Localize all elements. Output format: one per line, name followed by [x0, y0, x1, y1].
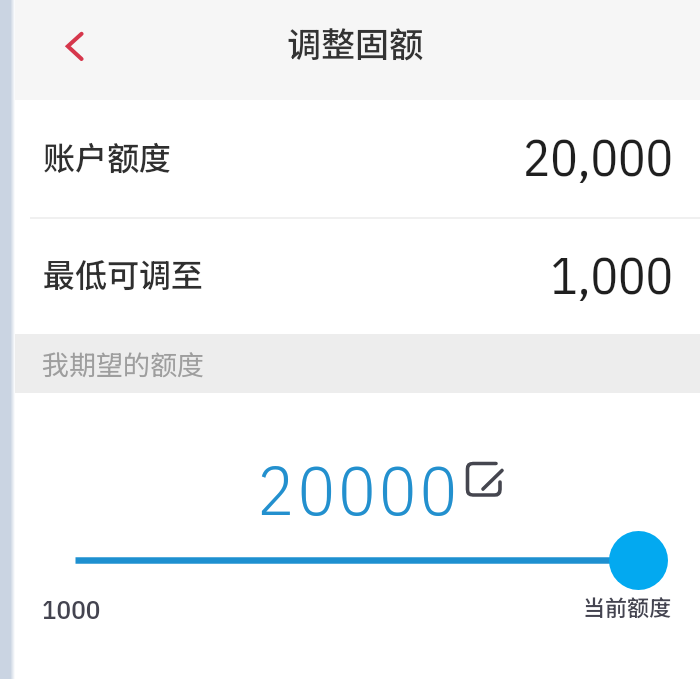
staticText: 调整固额	[5, 18, 700, 67]
button[interactable]: Edit amount	[462, 458, 508, 504]
button[interactable]: Back	[48, 22, 100, 74]
button[interactable]: 账户额度	[0, 100, 700, 218]
staticText: 当前额度	[583, 590, 672, 622]
button[interactable]: Credit limit slider	[0, 525, 700, 595]
staticText: 20,000	[0, 124, 673, 190]
staticText: 1,000	[0, 242, 673, 308]
staticText: 20000	[257, 444, 461, 534]
button[interactable]: Slider thumb	[609, 531, 668, 590]
staticText: 账户额度	[43, 133, 172, 179]
staticText: 最低可调至	[43, 250, 204, 296]
staticText: 1000	[42, 591, 101, 626]
staticText: 我期望的额度	[42, 344, 204, 383]
button[interactable]: 最低可调至	[0, 218, 700, 334]
